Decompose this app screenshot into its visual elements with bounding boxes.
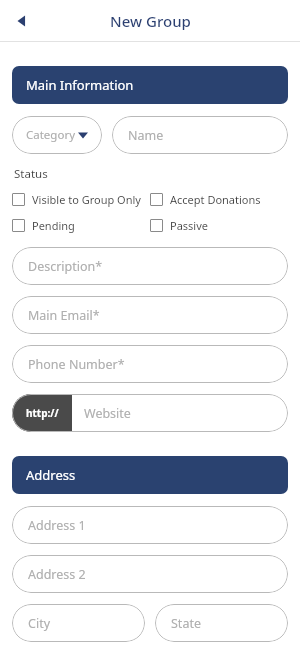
button[interactable]: Description* — [12, 247, 288, 285]
button[interactable]: Address 2 — [12, 555, 288, 593]
button[interactable]: Address — [12, 456, 288, 494]
button[interactable]: Phone Number* — [12, 345, 288, 383]
button[interactable]: Main Email* — [12, 296, 288, 334]
button[interactable]: Passive — [150, 218, 288, 233]
staticText: Passive — [170, 218, 208, 233]
button[interactable]: http:// — [12, 394, 288, 432]
button[interactable]: Name — [112, 116, 288, 154]
button[interactable]: Main Information — [12, 66, 288, 104]
staticText: Accept Donations — [170, 192, 261, 207]
staticText: Phone Number* — [28, 356, 125, 373]
staticText: Status — [14, 166, 48, 182]
button[interactable]: Category — [12, 116, 102, 154]
staticText: Address 1 — [28, 517, 86, 534]
staticText: Description* — [28, 258, 103, 275]
staticText: Name — [128, 127, 164, 144]
staticText: Category — [26, 127, 76, 143]
staticText: Address — [26, 466, 76, 484]
staticText: Main Email* — [28, 307, 100, 324]
staticText: Pending — [32, 218, 75, 233]
staticText: Address 2 — [28, 566, 86, 583]
button[interactable]: City — [12, 604, 145, 642]
staticText: Main Information — [26, 76, 134, 94]
button[interactable]: Pending — [12, 218, 150, 233]
staticText: http:// — [26, 406, 59, 420]
staticText: City — [28, 615, 51, 632]
button[interactable]: Back — [4, 3, 40, 39]
button[interactable]: Accept Donations — [150, 192, 288, 207]
staticText: Website — [84, 405, 131, 422]
button[interactable]: Address 1 — [12, 506, 288, 544]
button[interactable]: State — [155, 604, 288, 642]
staticText: State — [171, 615, 201, 632]
staticText: Visible to Group Only — [32, 192, 141, 207]
staticText: New Group — [110, 11, 191, 31]
button[interactable]: Visible to Group Only — [12, 192, 150, 207]
